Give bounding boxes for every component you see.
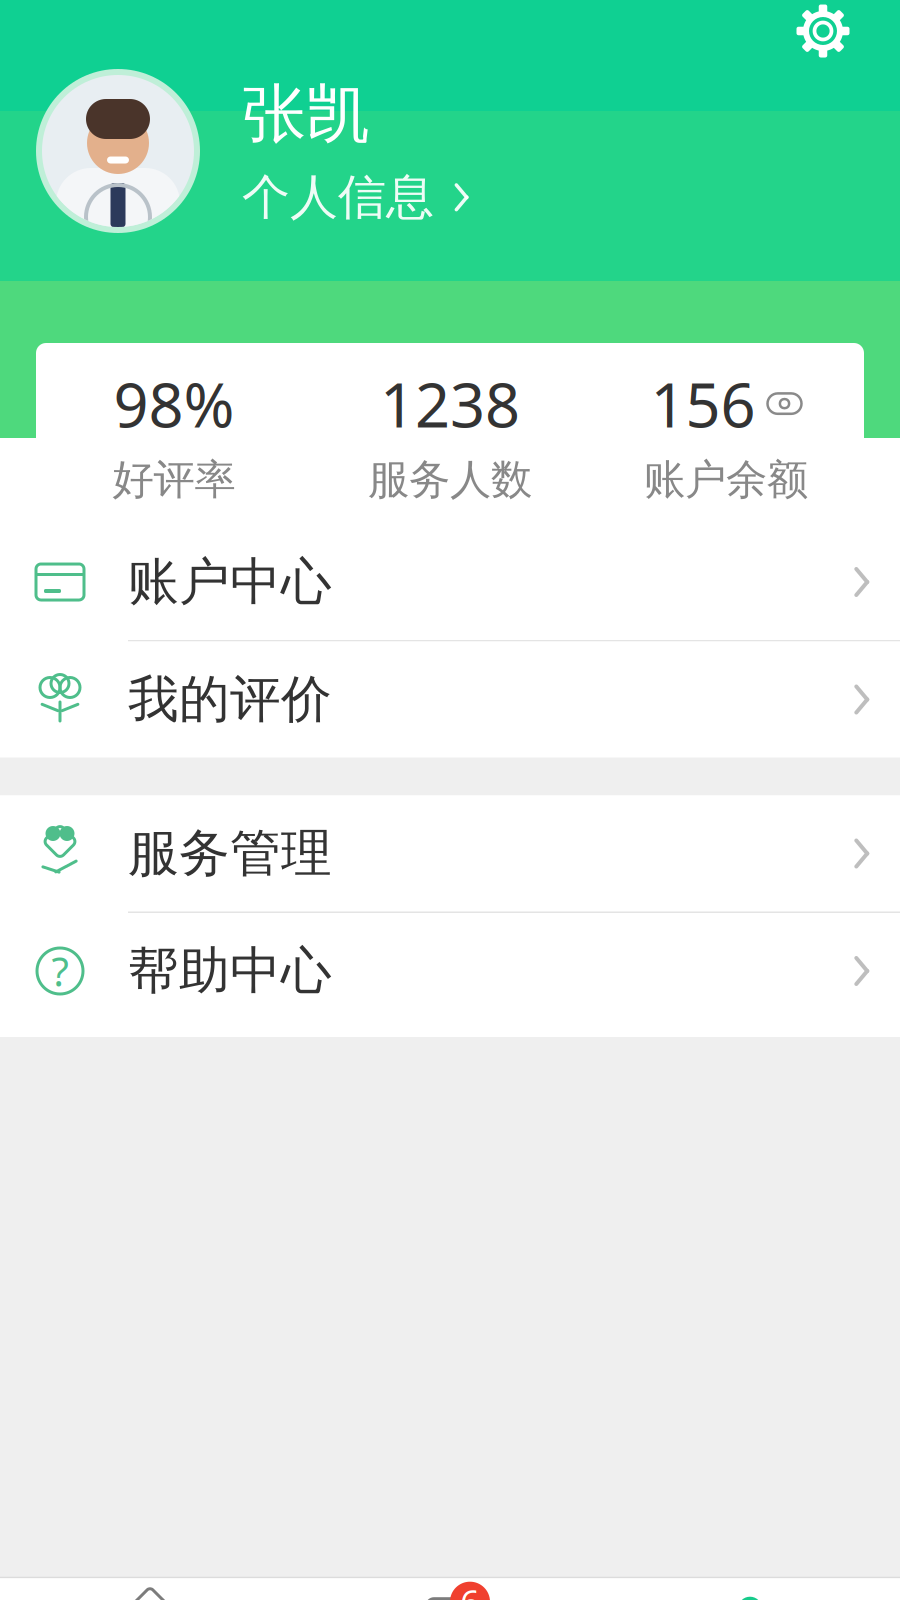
button[interactable]: 我的评价 <box>0 641 900 757</box>
staticText: ? <box>51 944 68 997</box>
staticText: 账户中心 <box>128 551 332 613</box>
button[interactable]: 张凯 <box>0 69 900 233</box>
staticText: 服务人数 <box>368 454 532 505</box>
staticText: 好评率 <box>112 454 235 505</box>
staticText: 张凯 <box>242 75 370 154</box>
staticText: 帮助中心 <box>128 940 332 1002</box>
staticText: 我的评价 <box>128 668 332 731</box>
staticText: 账户余额 <box>644 454 808 505</box>
staticText: 98% <box>113 363 234 444</box>
staticText: 156 <box>650 363 755 444</box>
button[interactable]: 设置 <box>784 0 862 70</box>
staticText: 个人信息 <box>242 168 434 227</box>
staticText: 服务管理 <box>128 822 332 885</box>
button[interactable]: 6 <box>300 1578 600 1600</box>
button[interactable]: ? <box>0 913 900 1029</box>
staticText: 1238 <box>380 363 520 444</box>
button[interactable]: 我的 <box>600 1578 900 1600</box>
button[interactable]: 服务管理 <box>0 795 900 913</box>
button[interactable]: 首页 <box>0 1578 300 1600</box>
button[interactable]: 账户中心 <box>0 524 900 641</box>
staticText: 6 <box>460 1579 480 1600</box>
